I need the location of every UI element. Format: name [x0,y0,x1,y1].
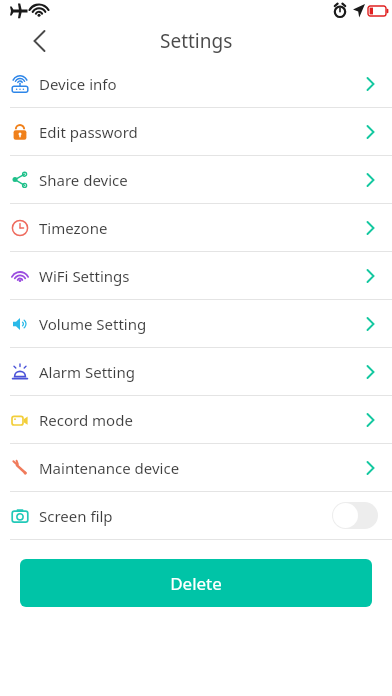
staticText: Edit password [39,122,138,142]
button[interactable]: Share device [0,156,392,203]
staticText: WiFi Settings [39,266,130,286]
staticText: Settings [160,28,233,54]
staticText: Share device [39,170,128,190]
staticText: Delete [170,572,222,595]
button[interactable]: Alarm Setting [0,348,392,395]
button[interactable]: Record mode [0,396,392,443]
button[interactable]: WiFi Settings [0,252,392,299]
staticText: Maintenance device [39,458,180,478]
staticText: Screen filp [39,506,113,526]
button[interactable]: Screen filp [0,492,392,539]
button[interactable]: Back [20,22,60,60]
staticText: Volume Setting [39,314,147,334]
staticText: Device info [39,74,117,94]
button[interactable]: Maintenance device [0,444,392,491]
button[interactable]: Screen flip toggle [332,502,378,529]
button[interactable]: Edit password [0,108,392,155]
staticText: Record mode [39,410,133,430]
button[interactable]: Delete [20,559,372,607]
button[interactable]: Volume Setting [0,300,392,347]
staticText: Timezone [39,218,108,238]
button[interactable]: Device info [0,60,392,107]
button[interactable]: Timezone [0,204,392,251]
staticText: Alarm Setting [39,362,135,382]
